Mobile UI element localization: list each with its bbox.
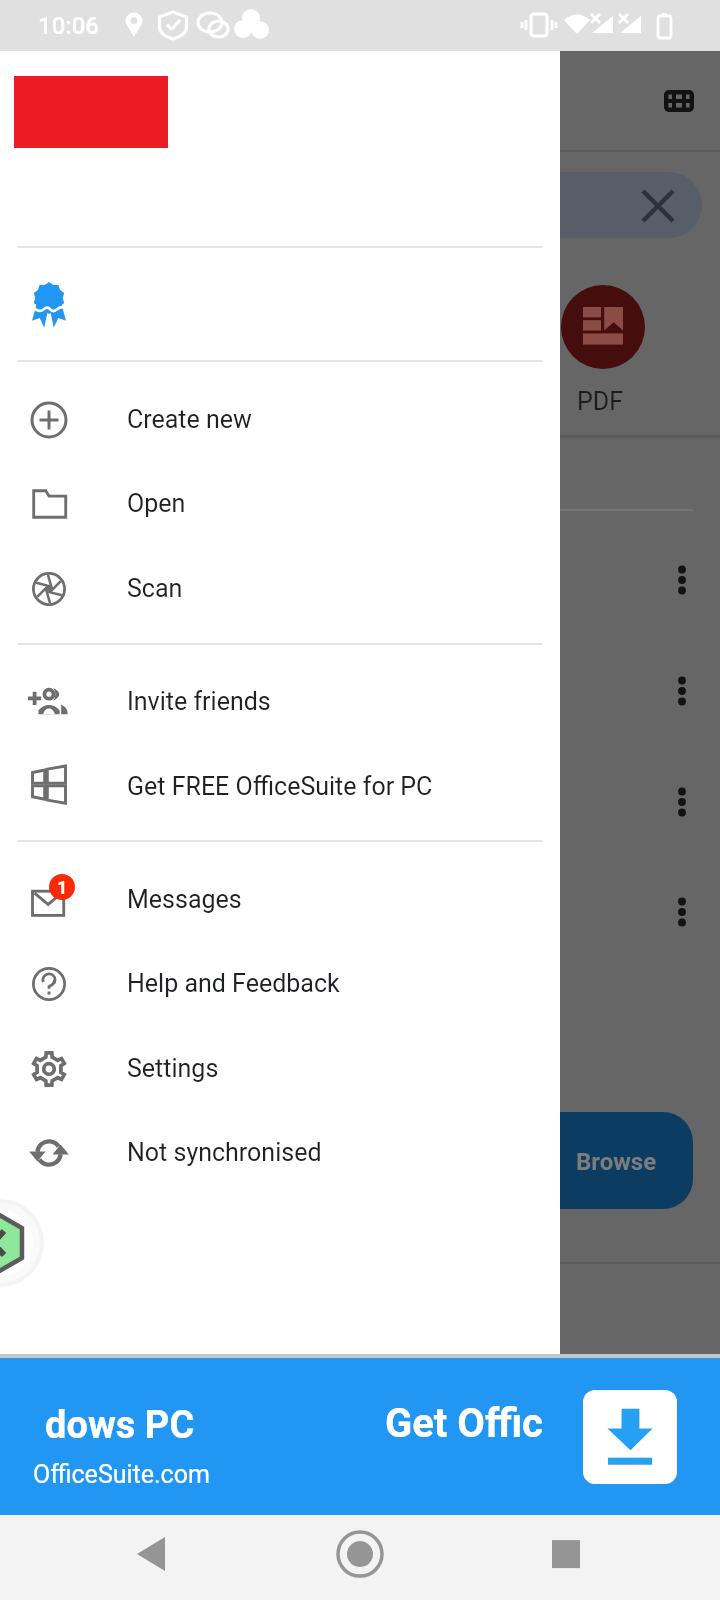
staticText: Scan [127,574,183,603]
button[interactable]: Invite friends [0,660,560,743]
button[interactable]: Not synchronised [0,1111,560,1194]
staticText: Settings [127,1054,219,1083]
button[interactable]: Grid view [651,73,707,129]
button[interactable]: dows PC [0,1358,720,1515]
staticText: Get FREE OfficeSuite for PC [127,772,433,801]
button[interactable]: More options [653,552,709,608]
staticText: 10:06 [38,12,99,40]
button[interactable]: Scan [0,547,560,630]
button[interactable]: More options [653,663,709,719]
staticText: Open [127,489,186,518]
staticText: dows PC [45,1403,195,1448]
staticText: Get Offic [385,1400,543,1447]
button[interactable]: Back [112,1515,192,1600]
staticText: Not synchronised [127,1138,322,1167]
button[interactable]: Home [320,1515,400,1600]
button[interactable]: Open [0,462,560,545]
staticText: Browse [576,1148,657,1176]
staticText: Create new [127,405,252,434]
button[interactable]: Assistant [0,1187,56,1299]
staticText: Invite friends [127,687,271,716]
button[interactable]: Clear search [630,178,686,234]
staticText: 1 [57,877,68,898]
button[interactable] [0,51,560,246]
staticText: OfficeSuite.com [33,1460,210,1489]
staticText: Help and Feedback [127,969,340,998]
button[interactable] [400,172,702,238]
button[interactable]: Browse [500,1112,693,1209]
button[interactable]: More options [653,774,709,830]
button[interactable]: Help and Feedback [0,942,560,1025]
button[interactable]: Recent apps [526,1515,606,1600]
staticText: PDF [577,387,623,416]
button[interactable]: More options [653,884,709,940]
button[interactable]: Premium [0,248,560,360]
button[interactable] [561,285,645,369]
button[interactable]: 1 [0,858,560,941]
staticText: Messages [127,885,242,914]
button[interactable]: Settings [0,1027,560,1110]
button[interactable]: Install [583,1390,677,1484]
button[interactable]: Create new [0,378,560,461]
button[interactable]: Get FREE OfficeSuite for PC [0,745,560,828]
